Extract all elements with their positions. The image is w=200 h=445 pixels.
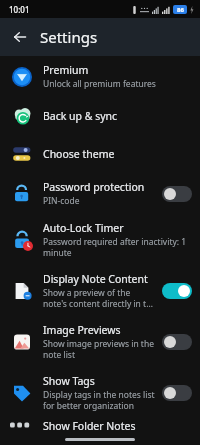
staticText: 86 — [177, 6, 184, 14]
staticText: Show Tags — [43, 374, 95, 388]
button[interactable]: Show Tags — [0, 367, 200, 418]
staticText: 10:01 — [9, 4, 30, 15]
button[interactable]: Image Previews — [0, 316, 200, 367]
staticText: Settings — [40, 27, 98, 47]
button[interactable]: Auto-Lock Timer — [0, 214, 200, 265]
button[interactable]: Toggle off — [162, 334, 192, 350]
button[interactable]: Password protection — [0, 173, 200, 214]
button[interactable]: Toggle off — [162, 385, 192, 401]
staticText: Image Previews — [43, 323, 121, 337]
button[interactable]: Display Note Content — [0, 265, 200, 316]
staticText: Premium — [43, 63, 89, 77]
button[interactable]: Back up & sync — [0, 97, 200, 135]
staticText: Password required after inactivity: 1 mi… — [43, 236, 192, 258]
button[interactable]: Toggle off — [162, 186, 192, 202]
button[interactable]: Toggle on — [162, 283, 192, 299]
staticText: Back up & sync — [43, 109, 118, 123]
staticText: Show a preview of the note's content dir… — [43, 287, 156, 309]
staticText: Auto-Lock Timer — [43, 221, 124, 235]
button[interactable]: Premium — [0, 56, 200, 97]
staticText: Password protection — [43, 180, 145, 194]
staticText: Display tags in the notes list for bette… — [43, 389, 156, 411]
staticText: Unlock all premium features — [43, 78, 156, 90]
button[interactable]: Show Folder Notes — [0, 418, 200, 434]
button[interactable]: Choose theme — [0, 135, 200, 173]
button[interactable]: Back — [6, 23, 34, 51]
staticText: Show image previews in the note list — [43, 338, 156, 360]
staticText: Display Note Content — [43, 272, 148, 286]
staticText: PIN-code — [43, 195, 80, 207]
staticText: Show Folder Notes — [43, 419, 136, 433]
staticText: Choose theme — [43, 147, 115, 161]
